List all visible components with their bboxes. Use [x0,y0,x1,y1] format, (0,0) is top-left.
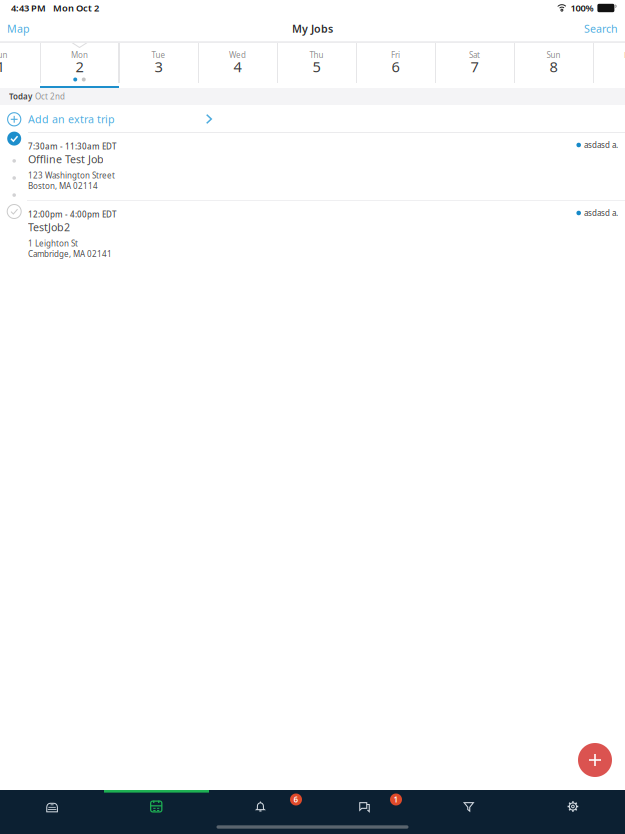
button[interactable]: Mon [40,42,119,88]
staticText: 7:30am - 11:30am EDT [28,141,116,152]
button[interactable]: Map [0,16,37,41]
button[interactable]: Notifications [208,790,312,834]
staticText: 4:43 PM [11,2,46,14]
button[interactable]: 12:00pm - 4:00pm EDT [0,201,625,268]
staticText: 12:00pm - 4:00pm EDT [28,209,116,220]
button[interactable]: Thu [277,42,356,88]
button[interactable]: Search [577,16,625,41]
staticText: TestJob2 [28,220,70,234]
button[interactable]: Sun [0,42,40,88]
staticText: Mon Oct 2 [53,2,99,14]
staticText: Thu [309,50,323,60]
button[interactable]: Add an extra trip [0,105,625,133]
staticText: 4 [233,57,241,76]
staticText: My Jobs [292,21,333,36]
staticText: Add an extra trip [28,112,115,126]
staticText: 1 [0,57,4,76]
staticText: 6 [293,794,298,805]
button[interactable]: Sun [514,42,593,88]
button[interactable]: Jobs map [0,790,104,834]
button[interactable]: Filters [417,790,521,834]
staticText: 1 Leighton St [28,238,78,249]
staticText: Sat [469,50,480,60]
staticText: Wed [229,50,246,60]
staticText: Sun [546,50,560,60]
staticText: Offline Test Job [28,152,104,166]
staticText: Oct 2nd [35,91,65,102]
staticText: Tue [151,50,165,60]
button[interactable]: Wed [198,42,277,88]
staticText: Today [9,91,32,102]
staticText: Mon [624,50,625,60]
staticText: 3 [154,57,162,76]
staticText: Search [584,21,618,36]
staticText: Boston, MA 02114 [28,181,98,191]
button[interactable]: Tue [119,42,198,88]
staticText: asdasd a. [584,208,618,218]
staticText: asdasd a. [584,140,618,150]
button[interactable]: Settings [521,790,625,834]
button[interactable]: Fri [356,42,435,88]
staticText: 6 [391,57,399,76]
staticText: 7 [470,57,478,76]
staticText: 123 Washington Street [28,170,115,181]
staticText: Mon [71,50,88,60]
button[interactable]: Schedule [104,790,208,834]
button[interactable]: Add [578,743,612,777]
staticText: Fri [391,50,400,60]
button[interactable]: Sat [435,42,514,88]
staticText: 8 [549,57,557,76]
staticText: Cambridge, MA 02141 [28,249,112,259]
button[interactable]: 7:30am - 11:30am EDT [0,133,625,200]
button[interactable]: Mon [593,42,625,88]
staticText: 100% [570,2,593,14]
button[interactable]: Messages [312,790,417,834]
staticText: Map [7,21,30,36]
staticText: 2 [75,57,83,76]
staticText: 5 [312,57,320,76]
staticText: 1 [393,794,398,805]
staticText: Sun [0,50,7,60]
